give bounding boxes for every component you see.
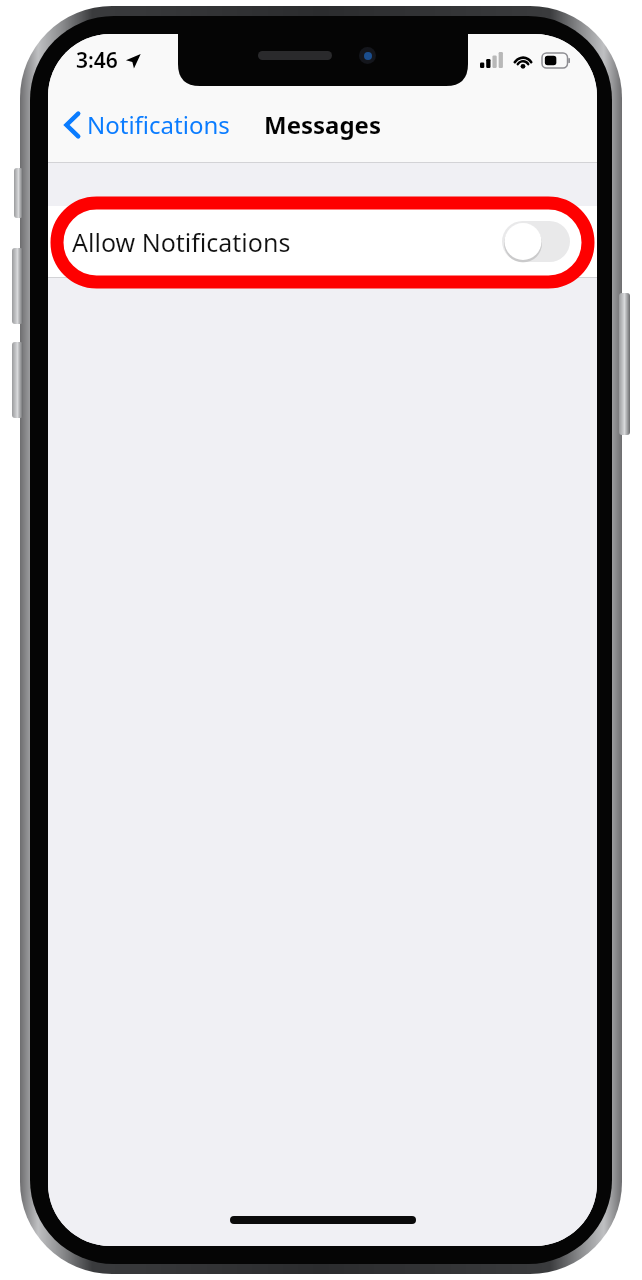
staticText: Messages [264, 108, 381, 141]
staticText: Allow Notifications [72, 225, 291, 259]
button[interactable]: Allow Notifications toggle, off [502, 221, 570, 262]
staticText: Notifications [87, 108, 230, 141]
staticText: 3:46 [76, 46, 118, 75]
button[interactable]: Notifications [48, 100, 240, 149]
button[interactable]: Allow Notifications [48, 206, 597, 277]
